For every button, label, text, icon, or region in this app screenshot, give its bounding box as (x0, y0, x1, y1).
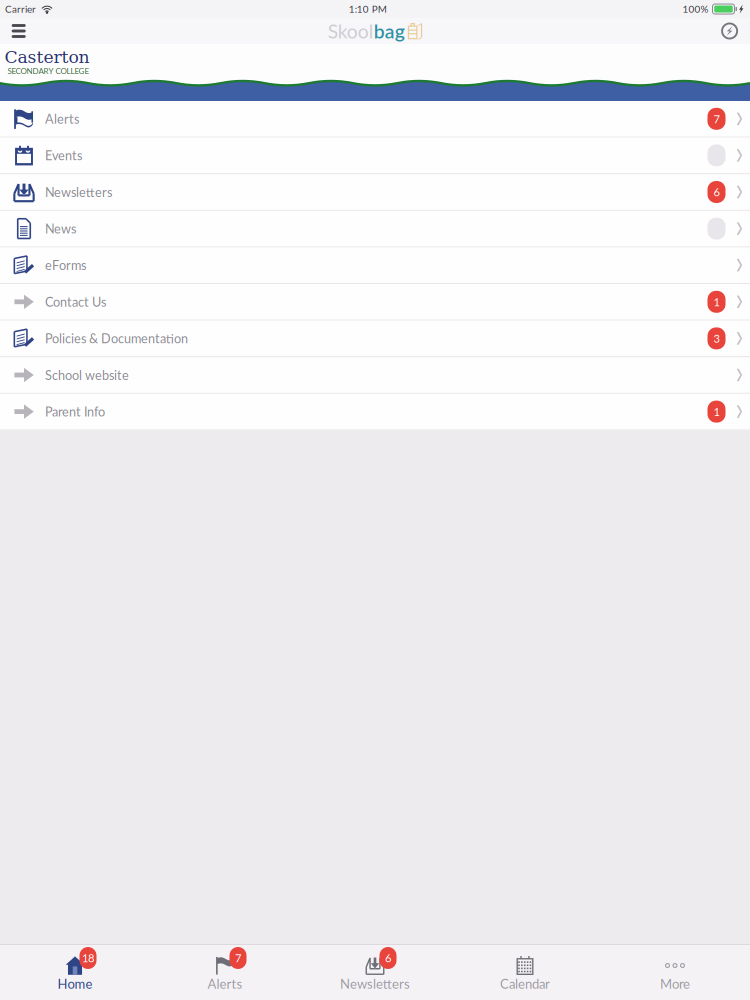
staticText: Casterton (4, 47, 89, 67)
button[interactable]: Policies & Documentation (0, 321, 750, 357)
staticText: 1 (713, 405, 719, 418)
staticText: 3 (713, 332, 719, 345)
staticText: 18 (82, 951, 94, 965)
staticText: 6 (385, 951, 391, 965)
staticText: Policies & Documentation (45, 331, 188, 346)
button[interactable]: More (600, 945, 750, 1000)
staticText: Calendar (500, 976, 550, 991)
button[interactable]: Alerts (0, 101, 750, 138)
staticText: Alerts (207, 976, 242, 991)
button[interactable]: Calendar (450, 945, 600, 1000)
staticText: News (45, 221, 76, 236)
staticText: School website (45, 367, 129, 383)
staticText: 7 (235, 951, 241, 965)
staticText: Events (45, 148, 82, 163)
staticText: More (660, 976, 690, 991)
staticText: Newsletters (45, 184, 112, 200)
button[interactable]: 7 (150, 945, 300, 1000)
staticText: Contact Us (45, 294, 106, 309)
staticText: Alerts (45, 111, 79, 126)
staticText: 1:10 PM (349, 3, 387, 15)
button[interactable]: Events (0, 138, 750, 174)
button[interactable]: Newsletters (0, 174, 750, 211)
staticText: Newsletters (340, 976, 410, 991)
staticText: 6 (713, 185, 719, 199)
button[interactable]: School website (0, 357, 750, 394)
button[interactable]: eForms (0, 247, 750, 284)
button[interactable]: 18 (0, 945, 150, 1000)
button[interactable]: 6 (300, 945, 450, 1000)
button[interactable]: News (0, 211, 750, 247)
button[interactable]: Refresh (704, 18, 750, 44)
staticText: SECONDARY COLLEGE (7, 66, 89, 76)
staticText: Skool (328, 19, 374, 43)
button[interactable]: Menu (0, 18, 46, 44)
staticText: Carrier (5, 3, 36, 15)
staticText: 7 (713, 112, 719, 125)
staticText: eForms (45, 258, 86, 273)
button[interactable]: Contact Us (0, 284, 750, 321)
button[interactable]: Parent Info (0, 394, 750, 430)
staticText: Parent Info (45, 404, 105, 419)
staticText: Home (57, 976, 92, 991)
staticText: 100% (682, 3, 708, 15)
staticText: bag (374, 19, 405, 43)
staticText: 1 (713, 295, 719, 308)
